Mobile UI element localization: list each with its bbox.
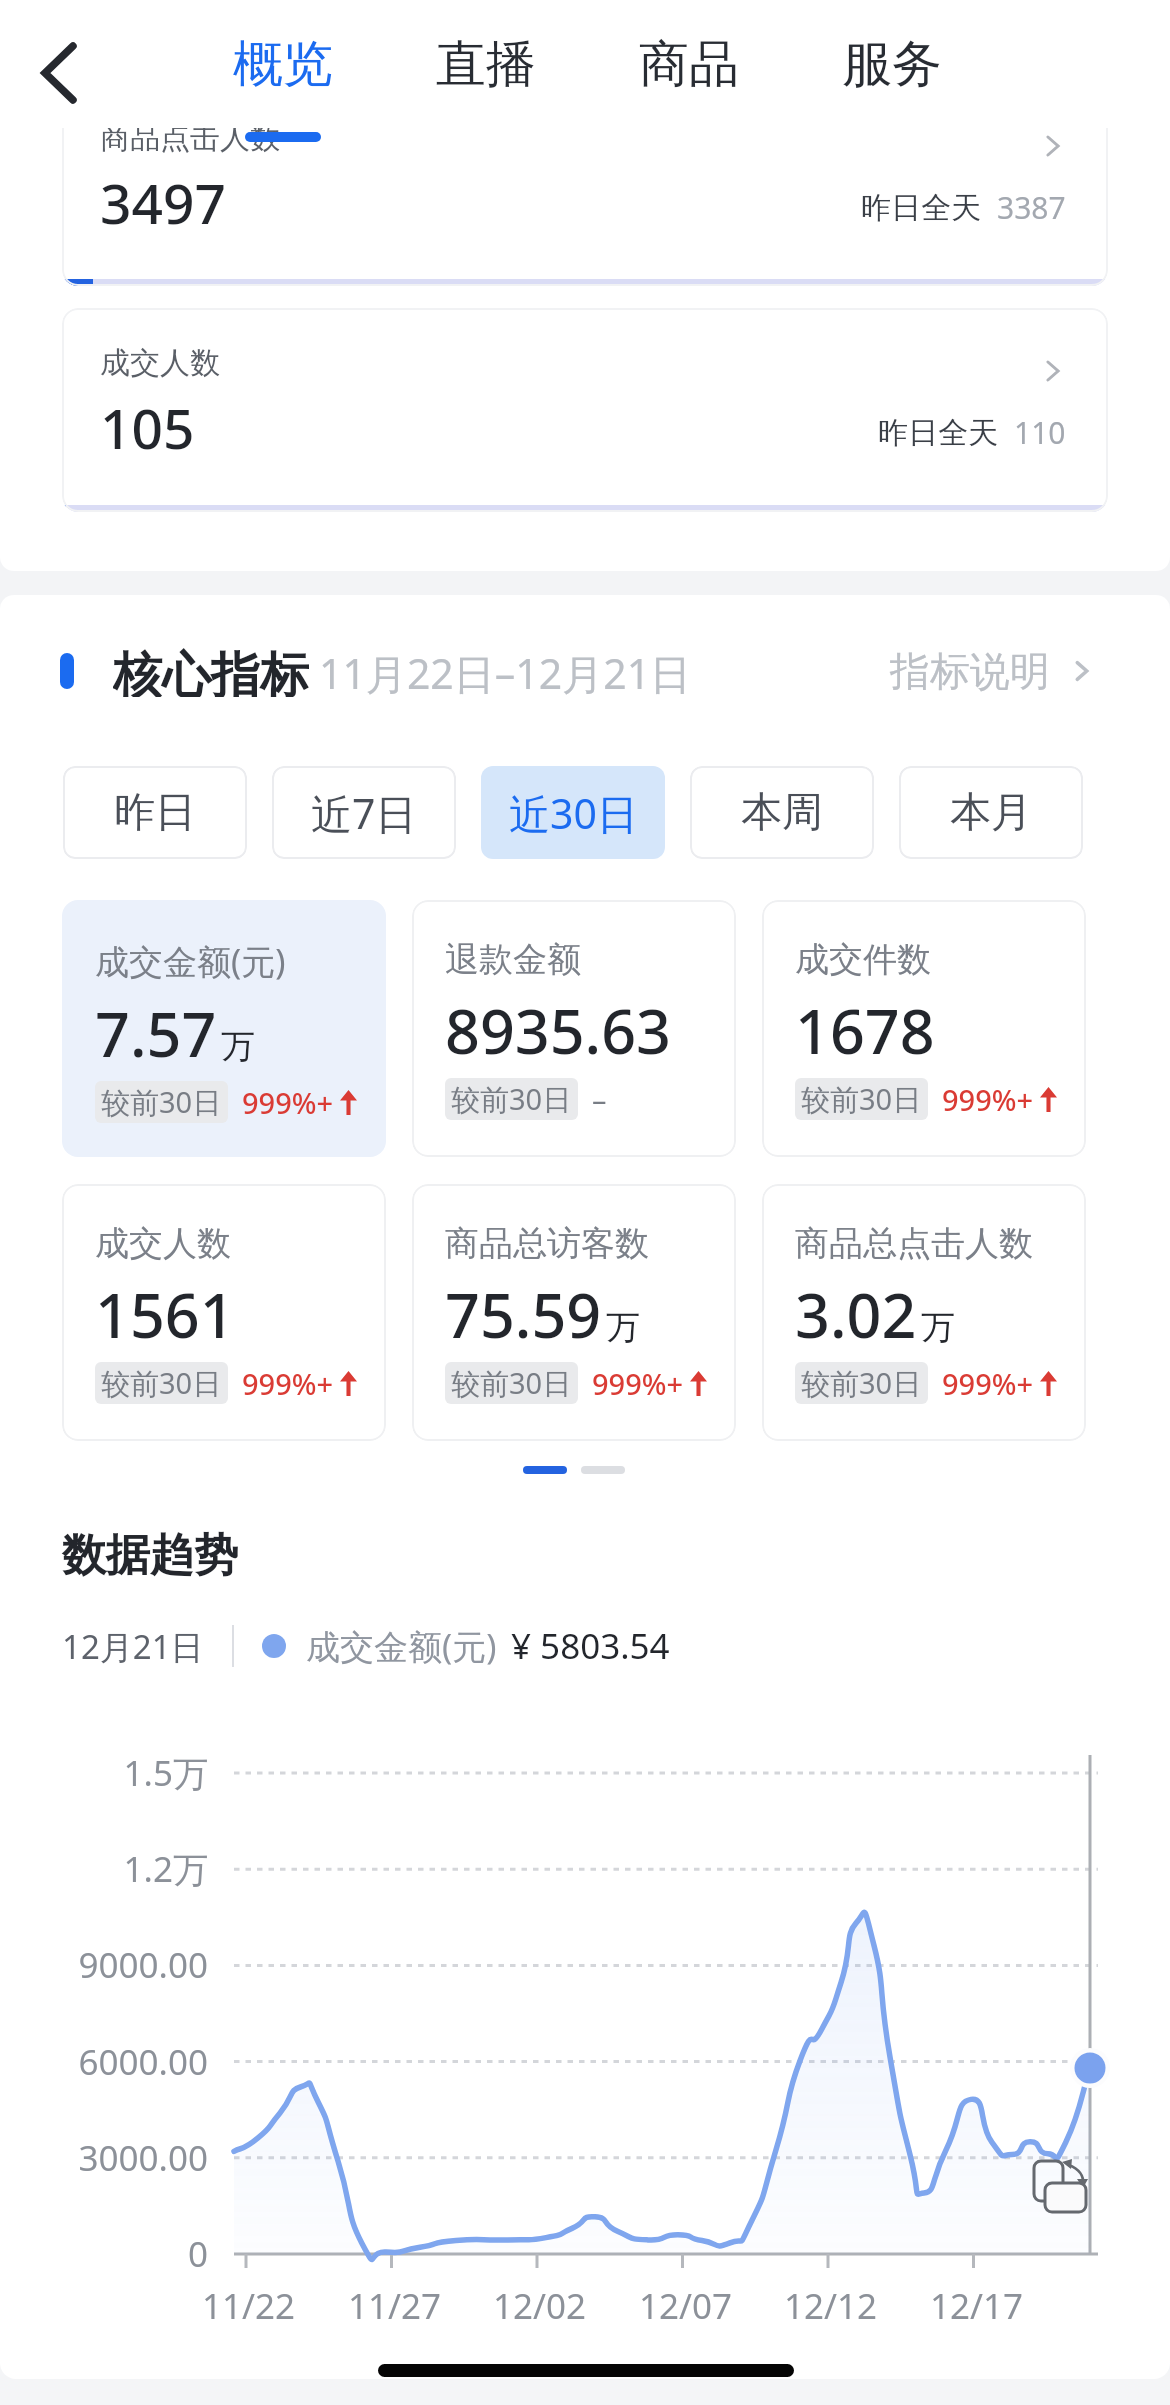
button[interactable]: 概览 (233, 33, 333, 96)
staticText: 昨日全天 (878, 414, 998, 452)
staticText: 较前30日 (801, 1363, 922, 1403)
button[interactable]: 成交人数 (62, 308, 1108, 512)
staticText: 指标说明 (890, 646, 1050, 696)
button[interactable]: 商品总访客数 (412, 1184, 736, 1441)
staticText: 110 (1014, 412, 1066, 453)
staticText: 8935.63 (445, 989, 671, 1072)
staticText: 概览 (233, 33, 333, 96)
staticText: 12/07 (639, 2282, 733, 2330)
staticText: 成交人数 (95, 1222, 231, 1265)
staticText: 7.57 (95, 992, 217, 1075)
staticText: 本月 (950, 787, 1032, 839)
button[interactable]: 商品 (639, 33, 739, 96)
button[interactable]: Back (6, 18, 112, 128)
button[interactable]: 商品总点击人数 (762, 1184, 1086, 1441)
staticText: 999%+ (942, 1080, 1034, 1119)
staticText: 11/22 (202, 2282, 296, 2330)
staticText: 12月21日 (62, 1624, 204, 1669)
staticText: 服务 (842, 33, 942, 96)
staticText: 商品总访客数 (445, 1222, 649, 1265)
staticText: 12/02 (493, 2282, 587, 2330)
button[interactable]: 近30日 (481, 766, 665, 859)
staticText: 3387 (997, 187, 1066, 228)
button[interactable]: Rotate to landscape (1030, 2156, 1088, 2214)
staticText: 本周 (741, 787, 823, 839)
staticText: 商品 (639, 33, 739, 96)
staticText: 105 (100, 390, 195, 465)
button[interactable]: 昨日 (63, 766, 247, 859)
button[interactable]: 近7日 (272, 766, 456, 859)
staticText: 万 (921, 1306, 955, 1349)
staticText: 较前30日 (451, 1079, 572, 1119)
button[interactable]: 退款金额 (412, 900, 736, 1157)
staticText: 万 (606, 1306, 640, 1349)
staticText: 核心指标 (113, 645, 309, 697)
staticText: 1.2万 (123, 1845, 208, 1893)
staticText: 商品总点击人数 (795, 1222, 1033, 1265)
staticText: 成交金额(元) (95, 938, 286, 984)
staticText: 1678 (795, 989, 935, 1072)
staticText: 0 (187, 2230, 208, 2278)
staticText: 成交金额(元) (306, 1623, 497, 1669)
staticText: 1561 (95, 1273, 235, 1356)
button[interactable]: 服务 (842, 33, 942, 96)
staticText: 11/27 (348, 2282, 442, 2330)
staticText: 近30日 (509, 785, 638, 841)
staticText: 直播 (436, 33, 536, 96)
staticText: – (592, 1080, 607, 1119)
staticText: 昨日全天 (861, 189, 981, 227)
staticText: 昨日 (114, 787, 196, 839)
staticText: 999%+ (242, 1083, 334, 1122)
staticText: 1.5万 (123, 1749, 208, 1797)
staticText: 3000.00 (78, 2134, 208, 2182)
staticText: 75.59 (445, 1273, 602, 1356)
staticText: 万 (221, 1025, 255, 1068)
staticText: 999%+ (242, 1364, 334, 1403)
staticText: 999%+ (592, 1364, 684, 1403)
staticText: 11月22日–12月21日 (319, 645, 692, 697)
staticText: 退款金额 (445, 938, 581, 981)
staticText: 近7日 (311, 785, 417, 841)
staticText: ¥ 5803.54 (511, 1622, 670, 1670)
button[interactable]: 成交金额(元) (62, 900, 386, 1157)
staticText: 数据趋势 (62, 1528, 238, 1583)
staticText: 999%+ (942, 1364, 1034, 1403)
button[interactable]: 本月 (899, 766, 1083, 859)
button[interactable]: 成交件数 (762, 900, 1086, 1157)
button[interactable]: 直播 (436, 33, 536, 96)
staticText: 3.02 (795, 1273, 917, 1356)
button[interactable]: 指标说明 (890, 646, 1096, 696)
staticText: 较前30日 (801, 1079, 922, 1119)
staticText: 9000.00 (78, 1941, 208, 1989)
staticText: 较前30日 (101, 1363, 222, 1403)
button[interactable]: 本周 (690, 766, 874, 859)
staticText: 商品点击人数 (100, 119, 280, 157)
button[interactable]: 商品点击人数 (62, 83, 1108, 286)
staticText: 较前30日 (451, 1363, 572, 1403)
staticText: 较前30日 (101, 1082, 222, 1122)
staticText: 6000.00 (78, 2038, 208, 2086)
staticText: 12/12 (784, 2282, 878, 2330)
staticText: 成交人数 (100, 344, 220, 382)
staticText: 成交件数 (795, 938, 931, 981)
staticText: 3497 (100, 165, 226, 240)
staticText: 12/17 (930, 2282, 1024, 2330)
button[interactable]: 成交人数 (62, 1184, 386, 1441)
